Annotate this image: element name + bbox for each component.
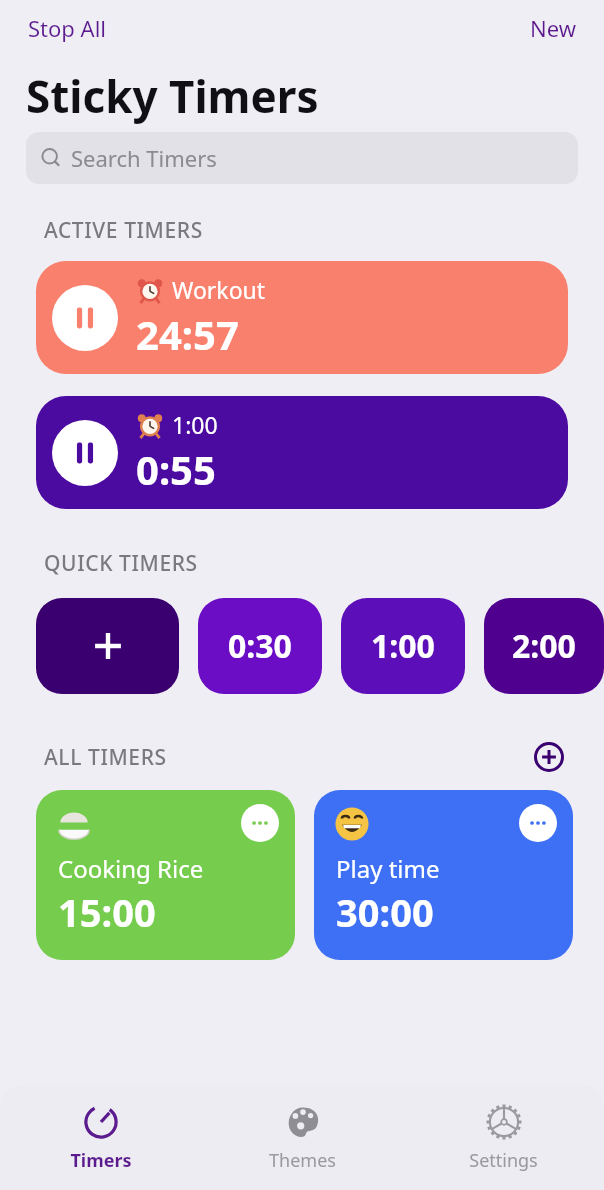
button[interactable]: More options (241, 804, 279, 842)
button[interactable]: 1:00 (341, 598, 465, 694)
staticText: Workout (172, 274, 266, 305)
button[interactable]: 0:30 (198, 598, 322, 694)
staticText: 30:00 (336, 886, 434, 938)
button[interactable]: Search Timers (26, 132, 578, 184)
staticText: Sticky Timers (26, 66, 319, 126)
button[interactable]: Pause (52, 420, 118, 486)
button[interactable]: More options (36, 790, 295, 960)
staticText: Play time (336, 852, 440, 885)
staticText: Search Timers (71, 143, 217, 173)
button[interactable]: More options (314, 790, 573, 960)
staticText: Stop All (28, 13, 106, 43)
button[interactable]: Stop All (26, 9, 108, 47)
button[interactable]: Add timer (530, 738, 568, 776)
staticText: 0:30 (228, 624, 292, 668)
button[interactable]: Settings (403, 1085, 604, 1190)
staticText: 1:00 (172, 409, 218, 440)
button[interactable]: More options (519, 804, 557, 842)
button[interactable]: 2:00 (484, 598, 604, 694)
staticText: 24:57 (136, 307, 239, 361)
button[interactable]: Add quick timer (36, 598, 179, 694)
staticText: ACTIVE TIMERS (44, 216, 203, 245)
staticText: ALL TIMERS (44, 743, 167, 772)
staticText: Settings (469, 1148, 538, 1173)
button[interactable]: Timers (0, 1085, 202, 1190)
staticText: Timers (70, 1148, 132, 1173)
button[interactable]: Pause (36, 261, 568, 374)
staticText: New (530, 13, 576, 43)
staticText: 1:00 (371, 624, 435, 668)
button[interactable]: Themes (202, 1085, 403, 1190)
staticText: 2:00 (512, 624, 576, 668)
staticText: QUICK TIMERS (44, 549, 198, 578)
staticText: 0:55 (136, 442, 216, 496)
staticText: Cooking Rice (58, 852, 204, 885)
staticText: 15:00 (58, 886, 156, 938)
button[interactable]: Pause (52, 285, 118, 351)
button[interactable]: New (528, 9, 578, 47)
button[interactable]: Pause (36, 396, 568, 509)
staticText: Themes (269, 1148, 336, 1173)
